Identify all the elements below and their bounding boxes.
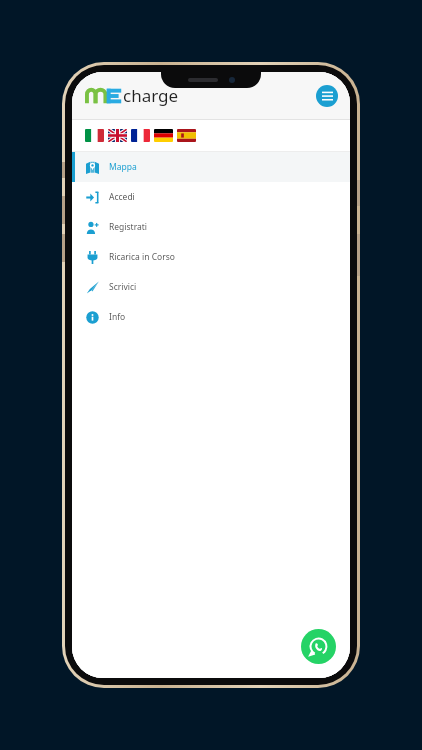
button[interactable] <box>85 129 104 142</box>
button[interactable]: Info <box>72 302 350 332</box>
button[interactable]: Ricarica in Corso <box>72 242 350 272</box>
button[interactable] <box>154 129 173 142</box>
staticText: Accedi <box>109 191 135 203</box>
staticText: Ricarica in Corso <box>109 251 175 263</box>
staticText: Mappa <box>109 161 137 173</box>
button[interactable] <box>131 129 150 142</box>
button[interactable]: Menu <box>316 85 338 107</box>
button[interactable]: Registrati <box>72 212 350 242</box>
staticText: Registrati <box>109 221 148 233</box>
button[interactable] <box>108 129 127 142</box>
button[interactable] <box>177 129 196 142</box>
staticText: Info <box>109 311 126 323</box>
button[interactable]: Scrivici <box>72 272 350 302</box>
staticText: charge <box>123 84 179 107</box>
button[interactable]: Accedi <box>72 182 350 212</box>
staticText: Scrivici <box>109 281 137 293</box>
button[interactable]: Mappa <box>72 152 350 182</box>
button[interactable]: WhatsApp <box>301 629 336 664</box>
